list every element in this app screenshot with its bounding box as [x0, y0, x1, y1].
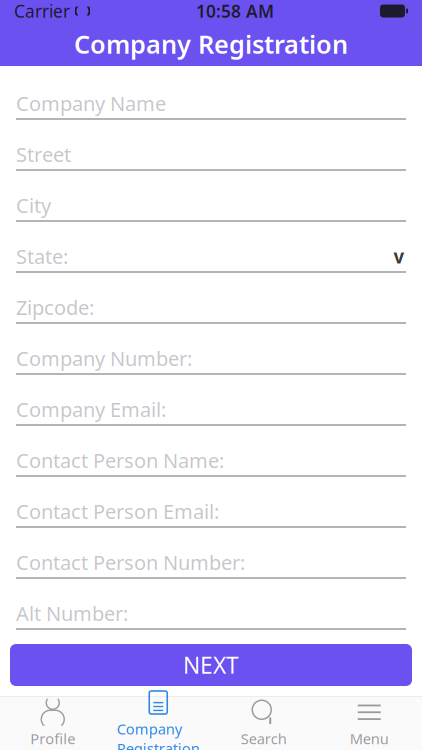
button[interactable]: Contact Person Name:: [16, 439, 406, 483]
staticText: Contact Person Name:: [16, 447, 224, 474]
staticText: v: [393, 244, 404, 269]
button[interactable]: Company Number:: [16, 337, 406, 381]
button[interactable]: Profile: [0, 697, 105, 750]
button[interactable]: Contact Person Number:: [16, 541, 406, 585]
staticText: Carrier: [14, 0, 70, 22]
staticText: Company Registration: [74, 27, 348, 61]
staticText: Profile: [30, 729, 75, 748]
button[interactable]: State:: [16, 235, 406, 279]
button[interactable]: Search: [211, 697, 316, 750]
staticText: Alt Number:: [16, 600, 128, 627]
button[interactable]: Contact Person Email:: [16, 490, 406, 534]
button[interactable]: Company Name: [16, 82, 406, 126]
staticText: Search: [241, 729, 287, 748]
staticText: Street: [16, 141, 71, 168]
staticText: Contact Person Number:: [16, 549, 245, 576]
staticText: Company Email:: [16, 396, 166, 423]
button[interactable]: Company Email:: [16, 388, 406, 432]
staticText: NEXT: [183, 650, 239, 680]
staticText: Company Registration: [117, 719, 200, 750]
button[interactable]: City: [16, 184, 406, 228]
staticText: Company Name: [16, 90, 166, 117]
button[interactable]: Alt Number:: [16, 592, 406, 636]
button[interactable]: Menu: [316, 697, 422, 750]
staticText: Contact Person Email:: [16, 498, 219, 525]
button[interactable]: Company Registration: [105, 697, 211, 750]
staticText: Menu: [350, 729, 389, 748]
button[interactable]: NEXT: [10, 644, 412, 686]
staticText: Company Number:: [16, 345, 192, 372]
staticText: 10:58 AM: [196, 0, 274, 22]
button[interactable]: Zipcode:: [16, 286, 406, 330]
staticText: State:: [16, 243, 68, 270]
staticText: City: [16, 192, 51, 219]
button[interactable]: Street: [16, 133, 406, 177]
staticText: Zipcode:: [16, 294, 94, 321]
